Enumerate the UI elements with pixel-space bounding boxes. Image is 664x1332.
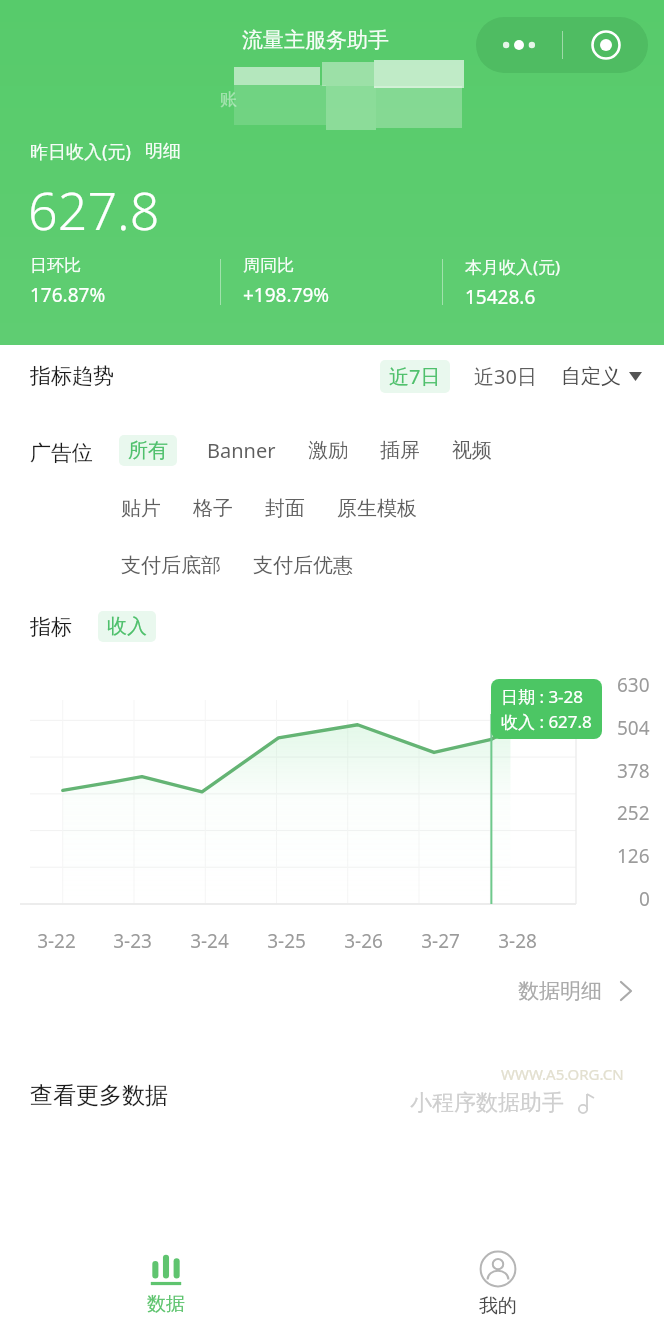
button[interactable]: 封面	[263, 493, 307, 524]
staticText: 3-28	[498, 928, 537, 954]
staticText: 3-26	[344, 928, 383, 954]
staticText: 我的	[479, 1294, 517, 1318]
staticText: 插屏	[380, 438, 420, 463]
staticText: 近7日	[389, 363, 441, 390]
staticText: 指标	[30, 614, 72, 640]
staticText: 流量主服务助手	[242, 27, 389, 53]
staticText: 3-22	[37, 928, 76, 954]
staticText: 数据明细	[518, 978, 602, 1004]
staticText: 627.8	[28, 174, 160, 245]
staticText: 126	[617, 843, 650, 869]
staticText: 支付后底部	[121, 553, 221, 578]
staticText: Banner	[207, 437, 276, 464]
staticText: 本月收入(元)	[465, 255, 561, 278]
staticText: 指标趋势	[30, 363, 114, 389]
staticText: 数据	[147, 1292, 185, 1316]
button[interactable]: 收入	[98, 611, 156, 642]
staticText: 252	[617, 800, 650, 826]
staticText: 3-25	[267, 928, 306, 954]
staticText: 支付后优惠	[253, 553, 353, 578]
button[interactable]: More and close	[476, 17, 648, 73]
staticText: 15428.6	[465, 284, 536, 310]
button[interactable]: 自定义	[561, 364, 642, 389]
staticText: 格子	[193, 496, 233, 521]
staticText: WWW.A5.ORG.CN	[501, 1064, 624, 1084]
staticText: +198.79%	[243, 282, 330, 308]
staticText: 原生模板	[337, 496, 417, 521]
staticText: 贴片	[121, 496, 161, 521]
button[interactable]: 原生模板	[335, 493, 419, 524]
staticText: 日环比	[30, 255, 81, 276]
button[interactable]: Banner	[205, 434, 278, 467]
staticText: 176.87%	[30, 282, 106, 308]
staticText: 激励	[308, 438, 348, 463]
staticText: 收入	[107, 614, 147, 639]
button[interactable]: 插屏	[378, 435, 422, 466]
button[interactable]: 我的	[332, 1236, 664, 1332]
staticText: 近30日	[474, 363, 537, 390]
staticText: 3-24	[190, 928, 229, 954]
staticText: 自定义	[561, 364, 621, 389]
button[interactable]: 明细	[145, 140, 181, 163]
staticText: 广告位	[30, 440, 93, 466]
staticText: 周同比	[243, 255, 294, 276]
button[interactable]: 所有	[119, 435, 177, 466]
button[interactable]: 支付后底部	[119, 550, 223, 581]
button[interactable]: 支付后优惠	[251, 550, 355, 581]
staticText: 3-27	[421, 928, 460, 954]
staticText: 收入 : 627.8	[501, 710, 592, 733]
staticText: 378	[617, 758, 650, 784]
staticText: 630	[617, 672, 650, 698]
button[interactable]: 数据	[0, 1236, 332, 1332]
button[interactable]: 贴片	[119, 493, 163, 524]
staticText: 3-23	[113, 928, 152, 954]
staticText: 昨日收入(元)	[30, 139, 131, 164]
staticText: 504	[617, 715, 650, 741]
staticText: 所有	[128, 438, 168, 463]
button[interactable]: 数据明细	[512, 970, 638, 1012]
staticText: 账	[220, 89, 237, 110]
staticText: 日期 : 3-28	[501, 685, 584, 708]
staticText: 封面	[265, 496, 305, 521]
button[interactable]: 激励	[306, 435, 350, 466]
button[interactable]: 视频	[450, 435, 494, 466]
button[interactable]: 查看更多数据	[30, 1081, 168, 1110]
staticText: 明细	[145, 140, 181, 163]
staticText: 小程序数据助手	[410, 1089, 564, 1117]
button[interactable]: 近7日	[380, 360, 450, 393]
staticText: 0	[639, 886, 650, 912]
staticText: 视频	[452, 438, 492, 463]
button[interactable]: 格子	[191, 493, 235, 524]
button[interactable]: 近30日	[472, 360, 539, 393]
